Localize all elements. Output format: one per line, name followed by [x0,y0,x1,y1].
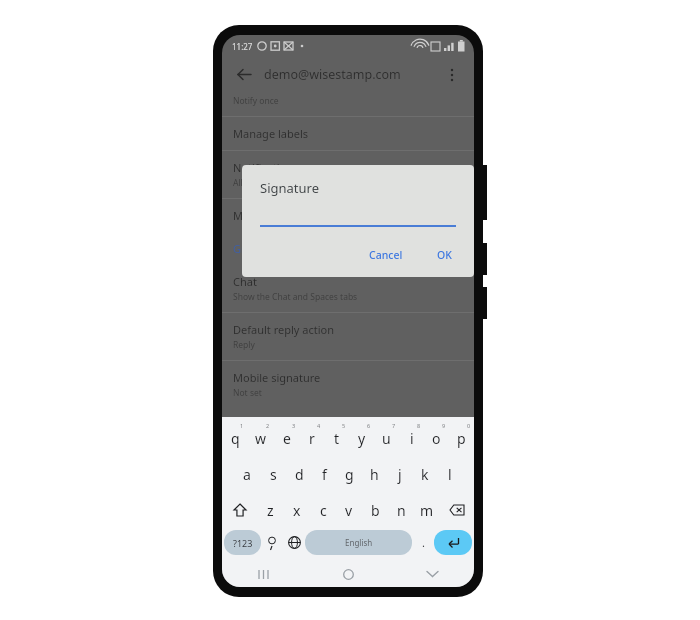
button[interactable]: OK [429,243,460,267]
button[interactable]: 7 [374,420,399,456]
staticText: n [397,501,406,520]
staticText: i [410,429,414,448]
staticText: l [448,465,452,484]
button[interactable]: v [336,492,362,528]
staticText: w [255,429,267,448]
button[interactable]: 1 [222,420,248,456]
button[interactable]: Manage labels [222,117,474,150]
staticText: 7 [392,422,396,429]
button[interactable]: d [286,456,312,492]
button[interactable]: Mobile signature [222,361,474,408]
button[interactable]: Gmail [222,232,474,265]
staticText: Notifications [233,160,299,175]
button[interactable]: 5 [324,420,349,456]
staticText: s [270,465,277,484]
button[interactable]: c [310,492,336,528]
staticText: All [233,177,243,189]
staticText: 6 [367,422,371,429]
staticText: Signature [260,179,319,197]
staticText: 9 [442,422,446,429]
staticText: a [243,465,251,484]
button[interactable]: g [337,456,362,492]
staticText: 5 [342,422,346,429]
button[interactable]: 2 [248,420,274,456]
staticText: Cancel [369,248,403,262]
button[interactable]: Shift [222,492,257,528]
staticText: e [283,429,291,448]
button[interactable]: Recent apps [222,561,306,587]
staticText: b [371,501,380,520]
button[interactable]: Change language [283,530,305,555]
staticText: Default reply action [233,322,334,337]
button[interactable]: 0 [449,420,474,456]
button[interactable]: 8 [399,420,424,456]
staticText: Manage labels [233,126,309,141]
button[interactable]: Notifications [222,151,474,198]
staticText: 3 [292,422,296,429]
button[interactable]: s [260,456,286,492]
staticText: m [420,501,434,520]
button[interactable]: 3 [274,420,299,456]
staticText: ?123 [233,537,253,549]
staticText: . [422,535,425,550]
staticText: u [382,429,391,448]
staticText: z [267,501,274,520]
button[interactable]: x [284,492,310,528]
staticText: OK [437,248,452,262]
button[interactable]: Manage labels [222,199,474,232]
staticText: x [293,501,301,520]
staticText: k [421,465,429,484]
staticText: 11:27 [232,41,253,52]
button[interactable]: k [412,456,437,492]
staticText: Not set [233,387,262,399]
button[interactable]: Chat [222,265,474,312]
staticText: Reply [233,339,255,351]
staticText: Notify once [233,95,279,107]
button[interactable]: Backspace [440,492,474,528]
button[interactable]: b [362,492,388,528]
button[interactable]: 4 [299,420,324,456]
staticText: Mobile signature [233,370,321,385]
staticText: g [345,465,354,484]
staticText: y [358,429,366,448]
staticText: Show the Chat and Spaces tabs [233,291,358,303]
staticText: 4 [317,422,321,429]
staticText: t [334,429,340,448]
staticText: 8 [417,422,421,429]
button[interactable]: Emoji and comma [261,530,283,555]
button[interactable]: h [362,456,387,492]
button[interactable]: f [312,456,337,492]
staticText: 1 [240,422,244,429]
button[interactable]: . [412,530,434,555]
staticText: j [398,465,402,484]
button[interactable]: l [437,456,462,492]
button[interactable]: 6 [349,420,374,456]
staticText: demo@wisestamp.com [264,66,401,83]
staticText: f [322,465,327,484]
button[interactable]: Back [232,62,256,86]
button[interactable]: English [305,530,412,555]
button[interactable]: n [388,492,414,528]
staticText: English [345,537,373,548]
button[interactable]: 9 [424,420,449,456]
button[interactable]: Home [306,561,390,587]
button[interactable]: m [414,492,440,528]
staticText: v [345,501,353,520]
staticText: c [320,501,327,520]
button[interactable]: ?123 [224,530,261,555]
staticText: 2 [266,422,270,429]
staticText: r [309,429,315,448]
staticText: o [432,429,441,448]
button[interactable]: a [234,456,260,492]
button[interactable]: z [257,492,284,528]
button[interactable]: Enter [434,530,472,555]
button[interactable]: More options [440,62,464,86]
button[interactable]: Hide keyboard [390,561,474,587]
button[interactable]: Cancel [361,243,411,267]
staticText: Manage labels [233,208,309,223]
staticText: Gmail [233,241,264,256]
staticText: Chat [233,274,257,289]
button[interactable]: Default reply action [222,313,474,360]
button[interactable]: j [387,456,412,492]
